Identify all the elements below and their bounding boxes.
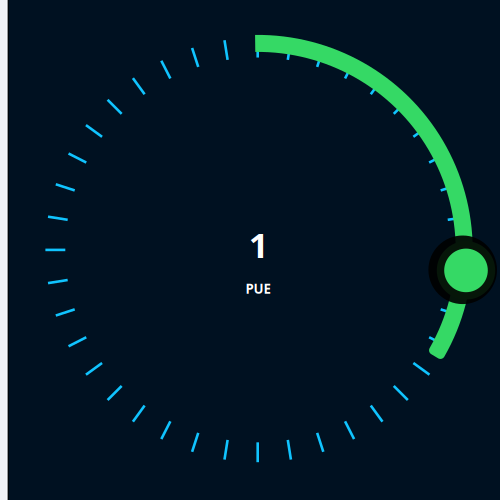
- button[interactable]: PUE gauge: [0, 0, 500, 500]
- staticText: 1: [249, 222, 269, 268]
- staticText: PUE: [246, 280, 271, 297]
